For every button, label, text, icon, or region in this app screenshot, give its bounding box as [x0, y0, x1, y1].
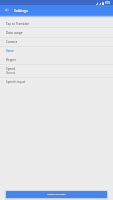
button[interactable]: Data usage	[0, 28, 113, 37]
button[interactable]: Navigate up	[0, 5, 13, 15]
staticText: Data usage	[6, 31, 23, 35]
button[interactable]: CLEAR HISTORY	[6, 191, 107, 198]
staticText: 81%	[105, 1, 111, 5]
staticText: Speech input	[6, 80, 25, 84]
staticText: Region	[6, 58, 17, 62]
staticText: CLEAR HISTORY	[47, 193, 66, 196]
staticText: Speed	[6, 67, 15, 71]
button[interactable]: Speed	[0, 65, 113, 77]
button[interactable]: Speech input	[0, 77, 113, 87]
button[interactable]: Camera	[0, 37, 113, 46]
staticText: Camera	[6, 40, 18, 44]
staticText: Voice	[6, 49, 14, 53]
staticText: Tap to Translate	[6, 22, 30, 26]
staticText: Settings	[14, 8, 28, 13]
button[interactable]: Region	[0, 55, 113, 65]
button[interactable]: Tap to Translate	[0, 17, 113, 30]
staticText: Normal	[6, 71, 16, 75]
